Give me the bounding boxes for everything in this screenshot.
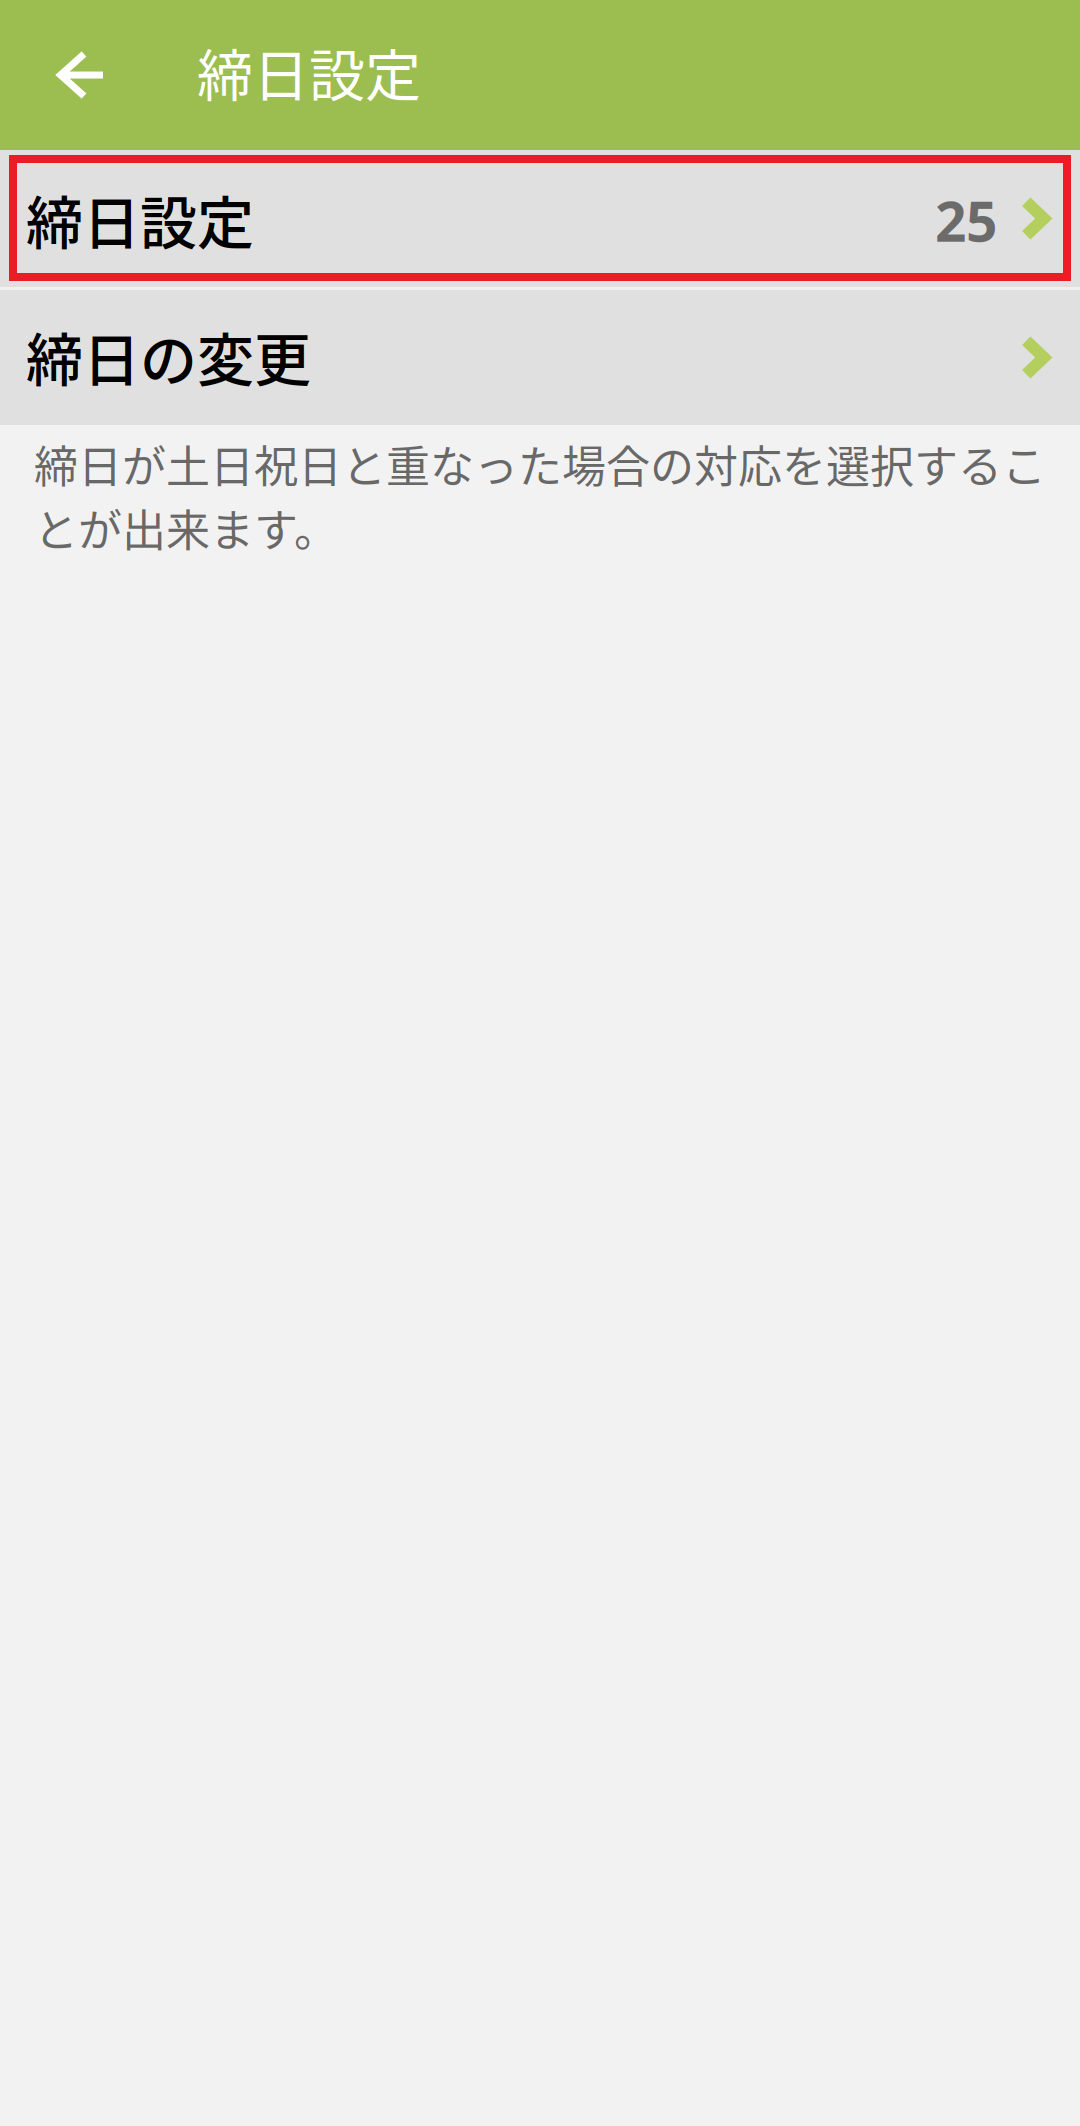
staticText: 締日の変更 — [26, 315, 311, 397]
staticText: 締日が土日祝日と重なった場合の対応を選択することが出来ます。 — [34, 432, 1046, 559]
button[interactable]: 締日の変更 — [0, 290, 1080, 425]
staticText: 締日設定 — [197, 31, 421, 112]
staticText: 25 — [935, 183, 997, 258]
button[interactable]: Back — [0, 0, 150, 150]
button[interactable]: 締日設定 — [0, 150, 1080, 287]
staticText: 締日設定 — [26, 178, 254, 260]
